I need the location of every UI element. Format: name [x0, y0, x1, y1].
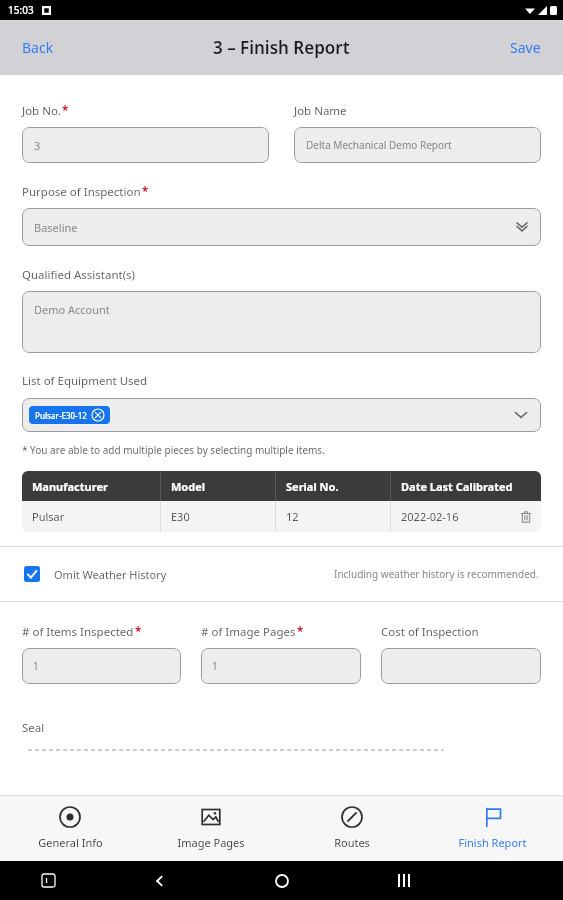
button[interactable]: Save	[502, 32, 549, 63]
button[interactable]: Routes	[281, 796, 422, 861]
staticText: Omit Weather History	[54, 567, 167, 582]
other: Remove Pulsar-E30-12	[92, 409, 104, 421]
staticText: Delta Mechanical Demo Report	[306, 138, 452, 152]
staticText: Manufacturer	[32, 479, 108, 494]
staticText: * You are able to add multiple pieces by…	[22, 443, 325, 457]
staticText: Pulsar	[32, 509, 65, 524]
staticText: *	[62, 103, 69, 119]
staticText: Model	[171, 479, 206, 494]
button[interactable]: Back	[14, 32, 62, 63]
staticText: 3	[34, 138, 41, 153]
button[interactable]: Pulsar	[22, 501, 541, 532]
button[interactable]: Finish Report	[422, 796, 563, 861]
staticText: Finish Report	[458, 835, 527, 850]
staticText: *	[297, 624, 304, 640]
staticText: E30	[171, 509, 190, 524]
button[interactable]: Demo Account	[22, 291, 541, 353]
button[interactable]: Delta Mechanical Demo Report	[294, 127, 541, 163]
button[interactable]: General Info	[0, 796, 140, 861]
button[interactable]: Image Pages	[140, 796, 281, 861]
staticText: Save	[510, 38, 541, 57]
staticText: Date Last Calibrated	[401, 479, 513, 494]
button[interactable]: Omit Weather History	[0, 547, 563, 601]
button[interactable]: 1	[22, 648, 181, 684]
button[interactable]: 1	[201, 648, 361, 684]
staticText: Seal	[22, 720, 45, 736]
staticText: Job No.	[22, 103, 61, 119]
staticText: Demo Account	[34, 302, 110, 317]
button[interactable]: Pulsar-E30-12	[29, 406, 110, 424]
staticText: 1	[33, 659, 39, 673]
button[interactable]: 3	[22, 127, 269, 163]
staticText: Cost of Inspection	[381, 624, 479, 640]
staticText: # of Items Inspected	[22, 624, 134, 640]
staticText: 1	[212, 659, 218, 673]
staticText: 15:03	[8, 3, 34, 17]
staticText: General Info	[38, 835, 103, 850]
staticText: Qualified Assistant(s)	[22, 267, 136, 283]
staticText: *	[142, 184, 149, 200]
staticText: Image Pages	[177, 835, 245, 850]
button[interactable]: Delete equipment row	[519, 510, 533, 524]
staticText: Purpose of Inspection	[22, 184, 141, 200]
staticText: Pulsar-E30-12	[35, 410, 87, 421]
staticText: Baseline	[34, 220, 78, 235]
staticText: Routes	[334, 835, 370, 850]
staticText: List of Equipment Used	[22, 373, 148, 389]
staticText: 12	[286, 509, 299, 524]
staticText: Serial No.	[286, 479, 339, 494]
staticText: 2022-02-16	[401, 509, 459, 524]
staticText: Back	[22, 38, 54, 57]
staticText: *	[135, 624, 142, 640]
button[interactable]	[381, 648, 541, 684]
staticText: Including weather history is recommended…	[334, 567, 539, 581]
staticText: Job Name	[294, 103, 347, 119]
button[interactable]: Baseline	[22, 208, 541, 246]
button[interactable]: Pulsar-E30-12	[22, 398, 541, 432]
staticText: 3 – Finish Report	[213, 36, 350, 59]
staticText: # of Image Pages	[201, 624, 296, 640]
